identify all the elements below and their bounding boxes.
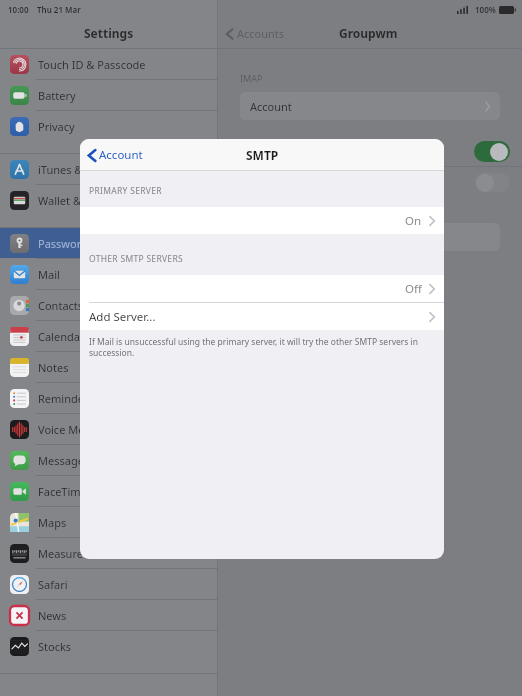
staticText: Account [250,99,292,114]
staticText: 10:00 [8,4,29,15]
staticText: PRIMARY SERVER [89,185,162,197]
button[interactable]: Add Server... [80,303,444,330]
staticText: News [38,608,67,623]
button[interactable]: Measure [0,538,218,568]
button[interactable]: Mail [0,259,218,289]
button[interactable]: Passwords & Accounts [0,228,218,258]
staticText: Account [99,147,143,163]
staticText: Groupwm [339,25,398,41]
button[interactable]: Messages [0,445,218,475]
button[interactable]: Safari [0,569,218,599]
button[interactable]: Contacts [0,290,218,320]
staticText: Stocks [38,639,72,654]
button[interactable]: News [0,600,218,630]
button[interactable]: Calendar [0,321,218,351]
button[interactable]: Back to Account [88,147,143,163]
button[interactable]: iTunes & App Store [0,154,218,184]
button[interactable]: Switch on [474,141,510,162]
staticText: Messages [38,453,90,468]
staticText: Settings [84,25,134,41]
button[interactable]: Privacy [0,111,218,141]
staticText: Safari [38,577,68,592]
staticText: Thu 21 Mar [37,4,81,15]
staticText: Contacts [38,298,84,313]
button[interactable]: Battery [0,80,218,110]
staticText: Privacy [38,119,75,134]
button[interactable]: Notes [0,352,218,382]
staticText: If Mail is unsuccessful using the primar… [89,336,430,358]
button[interactable]: On [80,207,444,234]
button[interactable]: Off [80,275,444,302]
button[interactable]: Back to Accounts [226,26,285,41]
staticText: IMAP [240,72,263,84]
staticText: Voice Memos [38,422,107,437]
staticText: Mail [38,267,60,282]
button[interactable]: Touch ID & Passcode [0,49,218,79]
staticText: Wallet & Apple Pay [38,193,135,208]
staticText: Notes [38,360,69,375]
button[interactable]: Account [240,92,500,120]
staticText: Off [405,281,422,297]
staticText: Add Server... [89,309,156,325]
staticText: OTHER SMTP SERVERS [89,253,183,265]
button[interactable]: Stocks [0,631,218,661]
button[interactable]: Reminders [0,383,218,413]
staticText: Touch ID & Passcode [38,57,146,72]
button[interactable]: Voice Memos [0,414,218,444]
button[interactable]: FaceTime [0,476,218,506]
staticText: Calendar [38,329,85,344]
staticText: 100% [475,4,496,15]
button[interactable]: Switch off [474,172,510,193]
staticText: FaceTime [38,484,87,499]
staticText: Accounts [237,26,285,41]
staticText: Maps [38,515,67,530]
staticText: Passwords & Accounts [38,236,154,251]
staticText: Battery [38,88,76,103]
staticText: iTunes & App Store [38,162,136,177]
staticText: On [405,213,422,229]
staticText: Measure [38,546,83,561]
button[interactable]: Wallet & Apple Pay [0,185,218,215]
button[interactable] [240,223,500,251]
staticText: SMTP [246,147,279,163]
staticText: Reminders [38,391,94,406]
button[interactable]: Maps [0,507,218,537]
